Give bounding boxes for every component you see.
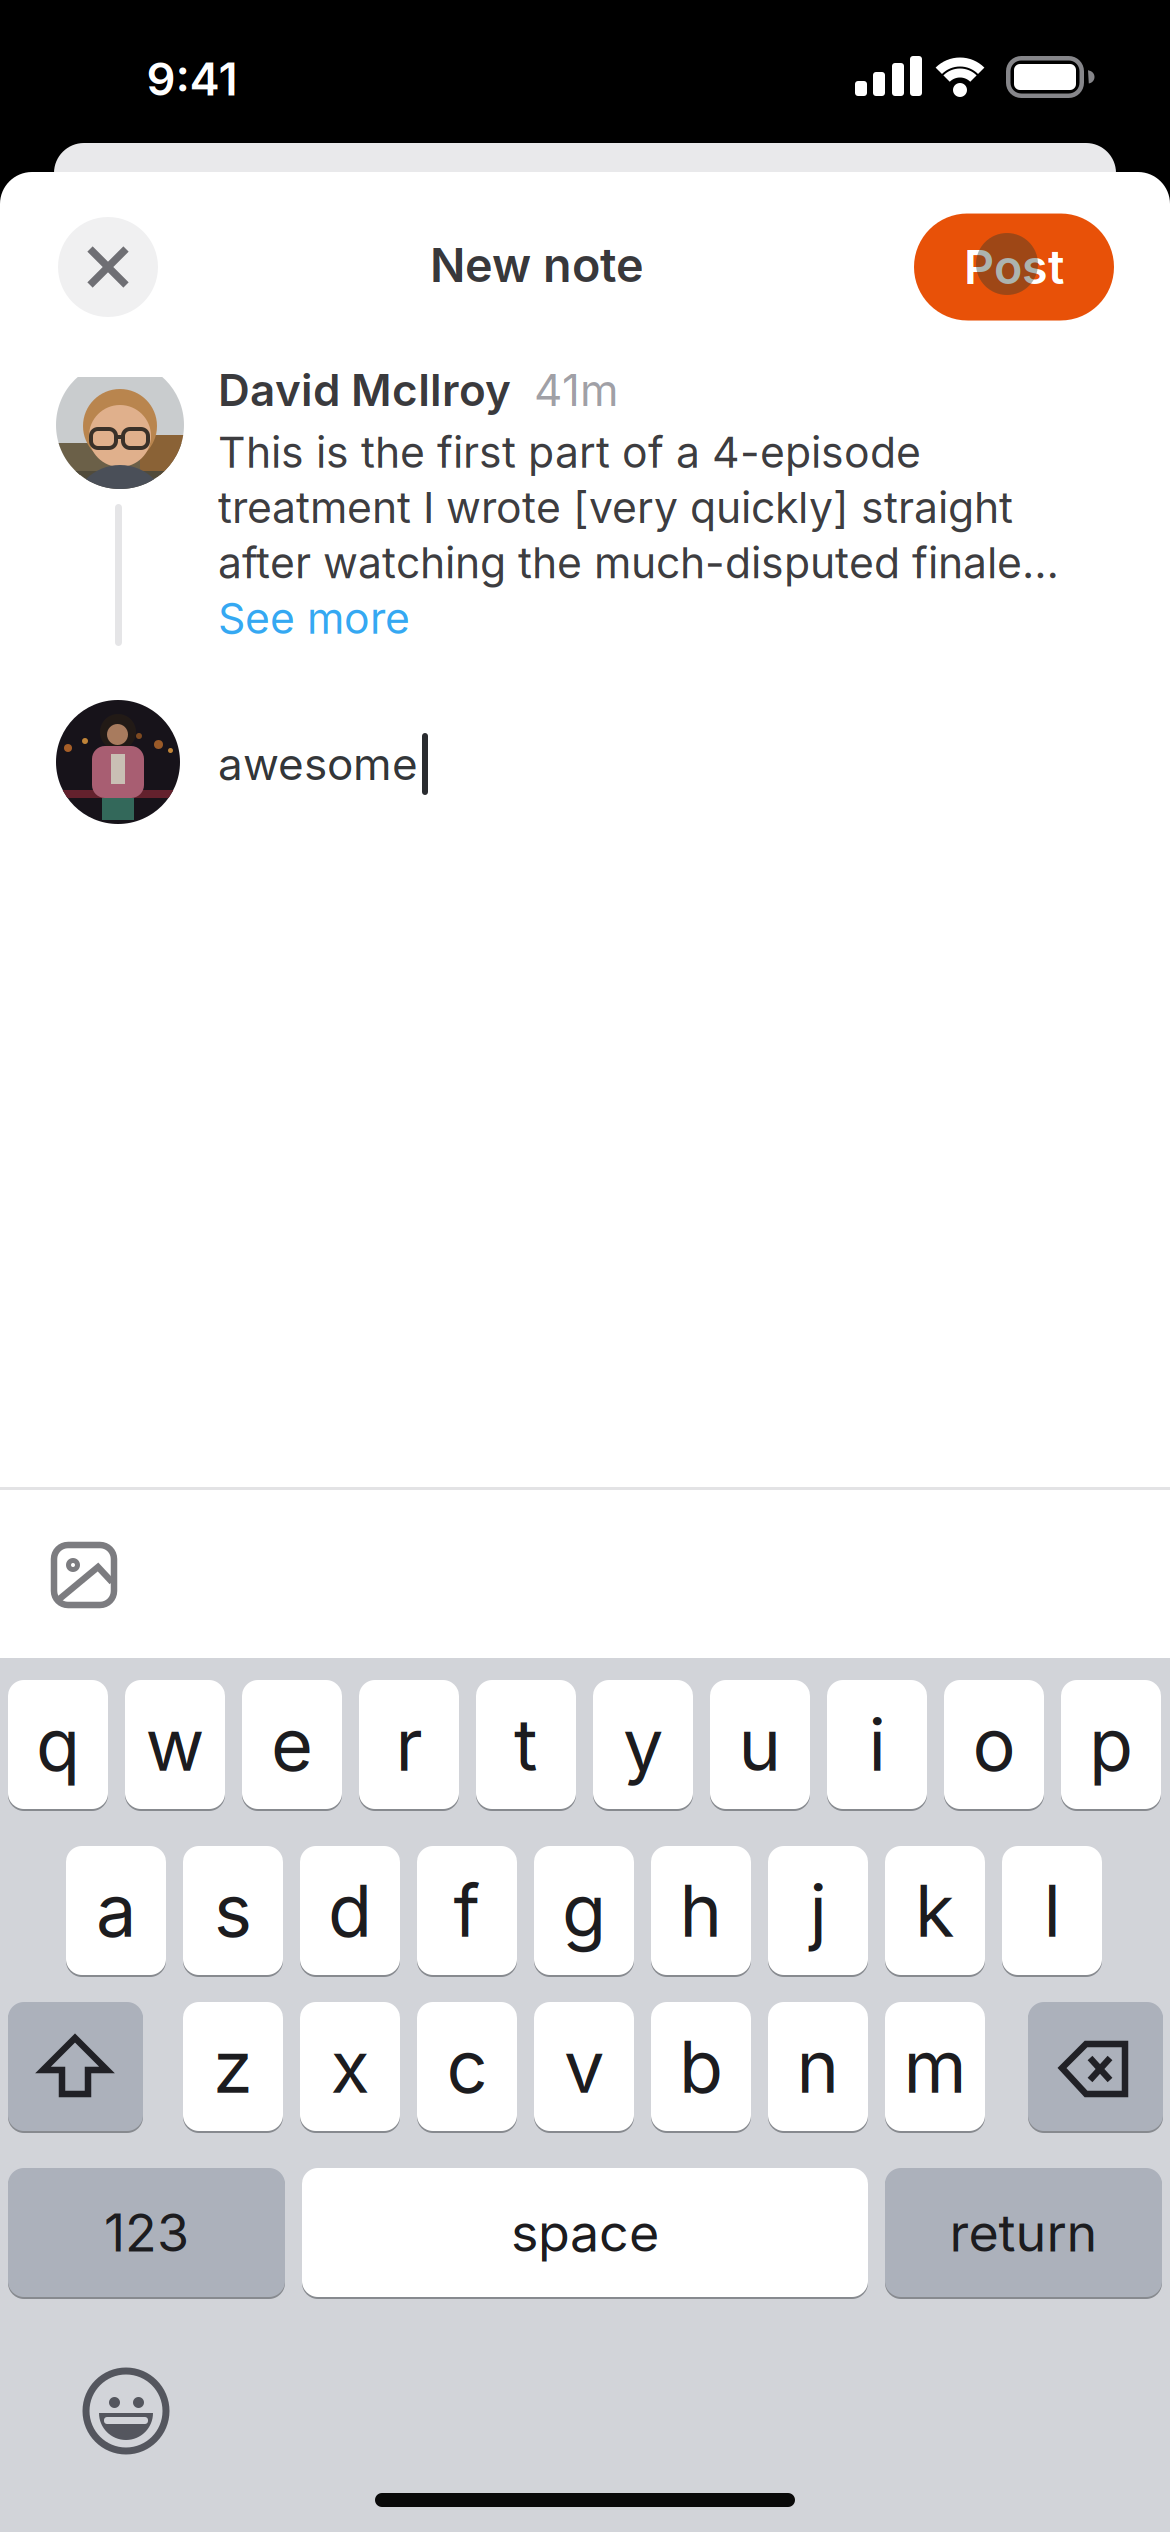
button[interactable]: Emoji <box>86 2371 166 2451</box>
staticText: c <box>446 2024 487 2109</box>
button[interactable]: Add photo <box>54 1545 114 1605</box>
button[interactable]: f <box>417 1846 517 1975</box>
staticText: o <box>972 1702 1015 1787</box>
staticText: b <box>679 2024 723 2109</box>
staticText: t <box>514 1702 538 1787</box>
button[interactable]: space <box>302 2168 868 2297</box>
button[interactable]: Delete <box>1028 2002 1163 2131</box>
button[interactable]: Shift <box>8 2002 143 2131</box>
staticText: i <box>868 1702 885 1787</box>
staticText: l <box>1043 1868 1060 1953</box>
staticText: 123 <box>104 2202 189 2263</box>
staticText: u <box>738 1702 781 1787</box>
button[interactable]: m <box>885 2002 985 2131</box>
button[interactable]: Close <box>58 217 158 317</box>
staticText: s <box>214 1868 252 1953</box>
button[interactable]: See more <box>218 593 410 643</box>
staticText: New note <box>430 237 644 293</box>
staticText: z <box>213 2024 253 2109</box>
staticText: m <box>903 2024 966 2109</box>
staticText: a <box>96 1868 136 1953</box>
button[interactable]: n <box>768 2002 868 2131</box>
staticText: 9:41 <box>146 52 237 106</box>
staticText: g <box>562 1868 606 1953</box>
button[interactable]: k <box>885 1846 985 1975</box>
button[interactable]: l <box>1002 1846 1102 1975</box>
button[interactable]: y <box>593 1680 693 1809</box>
staticText: after watching the much-disputed finale… <box>218 538 1059 588</box>
staticText: 41m <box>534 364 619 416</box>
button[interactable]: u <box>710 1680 810 1809</box>
staticText: q <box>36 1702 80 1787</box>
staticText: space <box>511 2202 659 2263</box>
staticText: return <box>949 2202 1097 2263</box>
button[interactable]: h <box>651 1846 751 1975</box>
staticText: r <box>395 1702 422 1787</box>
button[interactable]: t <box>476 1680 576 1809</box>
staticText: k <box>915 1868 955 1953</box>
staticText: This is the first part of a 4-episode <box>218 427 921 477</box>
button[interactable]: p <box>1061 1680 1161 1809</box>
button[interactable]: w <box>125 1680 225 1809</box>
staticText: awesome <box>218 738 418 790</box>
button[interactable]: c <box>417 2002 517 2131</box>
button[interactable]: i <box>827 1680 927 1809</box>
staticText: e <box>271 1702 313 1787</box>
staticText: Post <box>964 239 1064 295</box>
button[interactable]: g <box>534 1846 634 1975</box>
button[interactable]: return <box>885 2168 1162 2297</box>
staticText: j <box>809 1868 826 1953</box>
staticText: f <box>453 1868 480 1953</box>
button[interactable]: q <box>8 1680 108 1809</box>
button[interactable]: b <box>651 2002 751 2131</box>
staticText: n <box>796 2024 839 2109</box>
button[interactable]: e <box>242 1680 342 1809</box>
staticText: h <box>679 1868 722 1953</box>
button[interactable]: j <box>768 1846 868 1975</box>
staticText: w <box>145 1702 204 1787</box>
button[interactable]: o <box>944 1680 1044 1809</box>
staticText: See more <box>218 593 410 643</box>
staticText: v <box>564 2024 604 2109</box>
button[interactable]: d <box>300 1846 400 1975</box>
button[interactable]: z <box>183 2002 283 2131</box>
button[interactable]: a <box>66 1846 166 1975</box>
staticText: x <box>330 2024 369 2109</box>
button[interactable]: s <box>183 1846 283 1975</box>
button[interactable]: v <box>534 2002 634 2131</box>
staticText: David McIlroy <box>218 364 511 416</box>
button[interactable]: 123 <box>8 2168 285 2297</box>
button[interactable]: r <box>359 1680 459 1809</box>
staticText: y <box>623 1702 663 1787</box>
button[interactable]: Post <box>914 213 1114 320</box>
staticText: treatment I wrote [very quickly] straigh… <box>218 482 1013 533</box>
staticText: d <box>328 1868 372 1953</box>
button[interactable]: x <box>300 2002 400 2131</box>
staticText: p <box>1089 1702 1133 1787</box>
